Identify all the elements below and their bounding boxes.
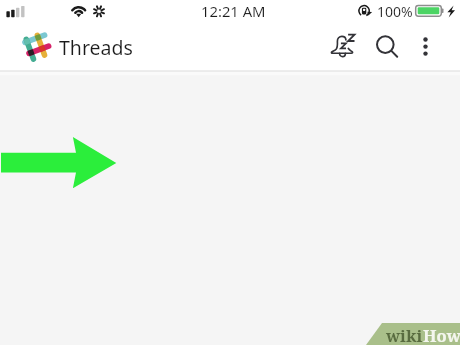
staticText: 100%	[377, 2, 413, 21]
staticText: How	[423, 324, 460, 345]
staticText: Threads	[59, 34, 133, 61]
button[interactable]: Notification settings	[322, 26, 363, 70]
button[interactable]: Threads	[10, 26, 150, 70]
staticText: wiki	[386, 324, 423, 345]
button[interactable]: More options	[408, 26, 444, 70]
button[interactable]: Search	[365, 26, 406, 70]
staticText: 12:21 AM	[201, 1, 266, 21]
